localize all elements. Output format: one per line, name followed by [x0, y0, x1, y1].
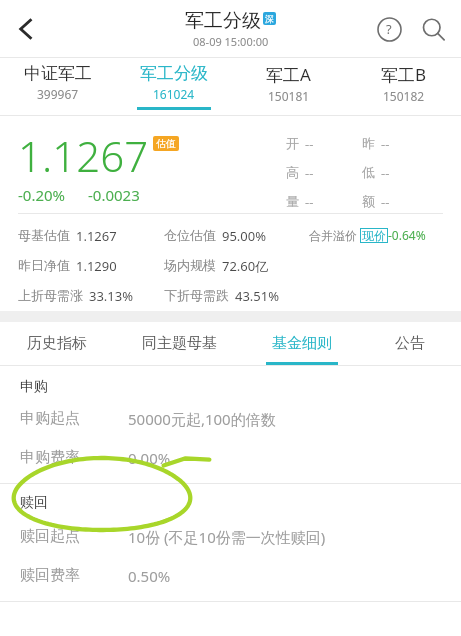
staticText: 估值	[156, 137, 176, 150]
staticText: 母基估值	[18, 227, 70, 243]
button[interactable]: 军工A	[231, 58, 346, 115]
staticText: 43.51%	[235, 287, 280, 305]
staticText: --	[381, 164, 390, 182]
staticText: --	[381, 135, 390, 153]
staticText: 场内规模	[164, 257, 216, 273]
button[interactable]: 申购起点	[0, 409, 461, 429]
staticText: --	[305, 135, 314, 153]
staticText: 军工A	[266, 63, 311, 86]
button[interactable]: 军工分级	[116, 58, 231, 115]
staticText: 150182	[383, 88, 425, 104]
staticText: 申购费率	[20, 448, 80, 467]
staticText: 深	[265, 13, 274, 24]
staticText: 399967	[37, 86, 79, 102]
staticText: 72.60亿	[222, 257, 269, 275]
button[interactable]: 赎回起点	[0, 527, 461, 547]
staticText: 赎回	[20, 494, 48, 512]
staticText: 昨日净值	[18, 257, 70, 273]
staticText: --	[305, 193, 314, 211]
staticText: -0.0023	[88, 185, 140, 205]
button[interactable]: 公告	[359, 322, 461, 365]
staticText: 军工分级	[140, 63, 208, 84]
staticText: 1.1290	[76, 257, 117, 275]
staticText: 军工分级	[185, 9, 261, 33]
staticText: 赎回费率	[20, 566, 80, 585]
staticText: 161024	[153, 86, 195, 102]
staticText: 同主题母基	[142, 334, 217, 353]
staticText: 公告	[395, 334, 425, 353]
staticText: 昨	[362, 135, 375, 151]
staticText: 50000元起,100的倍数	[128, 409, 276, 429]
staticText: 合并溢价	[309, 228, 357, 243]
staticText: -0.20%	[18, 185, 66, 205]
button[interactable]: 赎回费率	[0, 566, 461, 586]
staticText: 低	[362, 164, 375, 180]
staticText: 仓位估值	[164, 227, 216, 243]
staticText: 赎回起点	[20, 527, 80, 546]
button[interactable]: 中证军工	[0, 58, 116, 115]
staticText: 0.00%	[128, 448, 171, 468]
staticText: 上折母需涨	[18, 287, 83, 303]
button[interactable]: 军工B	[346, 58, 461, 115]
staticText: 1.1267	[76, 227, 117, 245]
staticText: ?	[386, 20, 392, 38]
staticText: 历史指标	[27, 334, 87, 353]
staticText: 额	[362, 193, 375, 209]
button[interactable]: 同主题母基	[114, 322, 245, 365]
staticText: --	[381, 193, 390, 211]
staticText: -0.64%	[388, 227, 426, 243]
staticText: 1.1267	[18, 127, 149, 184]
staticText: 下折母需跌	[164, 287, 229, 303]
staticText: 现价	[362, 228, 386, 243]
button[interactable]: Search	[411, 7, 455, 51]
staticText: 33.13%	[89, 287, 134, 305]
button[interactable]: 基金细则	[245, 322, 359, 365]
staticText: 基金细则	[272, 334, 332, 353]
staticText: 开	[286, 135, 299, 151]
staticText: 高	[286, 164, 299, 180]
staticText: 军工B	[381, 63, 427, 86]
staticText: 150181	[268, 88, 310, 104]
staticText: 95.00%	[222, 227, 267, 245]
staticText: 0.50%	[128, 566, 171, 586]
staticText: 申购起点	[20, 409, 80, 428]
button[interactable]: 历史指标	[0, 322, 114, 365]
staticText: 08-09 15:00:00	[193, 34, 269, 49]
button[interactable]: Back	[0, 0, 52, 57]
button[interactable]: 申购费率	[0, 448, 461, 468]
staticText: 中证军工	[24, 63, 92, 84]
button[interactable]: Help	[367, 7, 411, 51]
staticText: 申购	[20, 378, 48, 396]
staticText: --	[305, 164, 314, 182]
staticText: 量	[286, 193, 299, 209]
staticText: 10份 (不足10份需一次性赎回)	[128, 527, 326, 547]
